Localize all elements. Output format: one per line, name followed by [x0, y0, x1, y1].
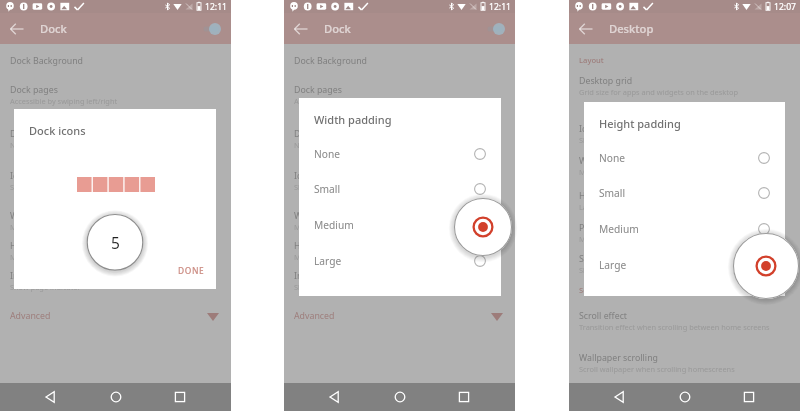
- staticText: Layout: [579, 55, 604, 65]
- staticText: Show the status bar: [579, 265, 648, 275]
- button[interactable]: Recent apps: [166, 383, 194, 411]
- button[interactable]: Dock Background: [0, 49, 231, 73]
- staticText: Dock pages: [10, 84, 58, 96]
- staticText: Large: [599, 258, 627, 272]
- button[interactable]: None: [299, 136, 501, 172]
- staticText: Height padding: [599, 116, 681, 131]
- button[interactable]: Desktop grid: [569, 69, 800, 102]
- staticText: Medium: [294, 252, 323, 262]
- button[interactable]: Dock icons: [284, 122, 515, 155]
- staticText: Dock icons: [294, 128, 339, 140]
- staticText: Grid size for apps and widgets on the de…: [579, 87, 738, 97]
- staticText: 5: [111, 232, 120, 253]
- button[interactable]: Medium: [299, 207, 501, 243]
- staticText: Transition effect when scrolling between…: [579, 322, 770, 332]
- staticText: Advanced: [10, 310, 51, 322]
- button[interactable]: Indicator: [284, 264, 515, 297]
- staticText: None: [314, 147, 340, 161]
- button[interactable]: Home: [386, 383, 414, 411]
- button[interactable]: Dock icons: [0, 122, 231, 155]
- staticText: Desktop: [609, 21, 654, 36]
- staticText: Width padding: [314, 112, 392, 127]
- button[interactable]: Dock pages: [284, 78, 515, 111]
- button[interactable]: Large: [299, 243, 501, 279]
- staticText: Medium: [579, 167, 608, 177]
- button[interactable]: Height padding: [0, 234, 231, 267]
- staticText: Status bar: [579, 253, 622, 265]
- staticText: 12:07: [774, 1, 796, 13]
- button[interactable]: Navigate up: [5, 16, 31, 42]
- staticText: Indicator: [10, 270, 48, 282]
- button[interactable]: None: [584, 140, 785, 176]
- button[interactable]: Indicator: [0, 264, 231, 297]
- staticText: Scroll wallpaper when scrolling homescre…: [579, 364, 735, 374]
- button[interactable]: Large: [584, 247, 785, 283]
- staticText: Accessible by swiping left/right: [10, 96, 118, 106]
- staticText: Medium: [599, 222, 639, 236]
- button[interactable]: Medium: [584, 211, 785, 247]
- button[interactable]: Advanced: [284, 303, 515, 329]
- staticText: Dock: [324, 21, 351, 36]
- button[interactable]: Wallpaper scrolling: [569, 346, 800, 379]
- staticText: Large: [579, 202, 599, 212]
- button[interactable]: Scroll effect: [569, 304, 800, 337]
- staticText: Dock: [40, 21, 67, 36]
- button[interactable]: Icon labels: [0, 164, 231, 197]
- staticText: Indicator: [294, 270, 332, 282]
- staticText: None: [599, 151, 625, 165]
- button[interactable]: Height padding: [284, 234, 515, 267]
- button[interactable]: Small: [299, 171, 501, 207]
- button[interactable]: Advanced: [0, 303, 231, 329]
- button[interactable]: Status bar: [569, 247, 800, 280]
- button[interactable]: Width padding: [284, 204, 515, 237]
- button[interactable]: Back: [37, 383, 65, 411]
- staticText: Icon labels: [10, 170, 55, 182]
- button[interactable]: Small: [584, 175, 785, 211]
- staticText: Accessible by swiping left/right: [294, 96, 402, 106]
- staticText: Show labels under dock icons: [10, 182, 113, 192]
- button[interactable]: Icon labels: [569, 117, 800, 150]
- staticText: Scroll effect: [579, 310, 628, 322]
- staticText: Show labels under dock icons: [294, 182, 397, 192]
- button[interactable]: Persistent search bar: [569, 216, 800, 249]
- button[interactable]: Dock pages: [0, 78, 231, 111]
- button[interactable]: DONE: [172, 261, 210, 279]
- staticText: Width padding: [10, 210, 72, 222]
- staticText: DONE: [178, 265, 205, 276]
- button[interactable]: Back: [606, 383, 634, 411]
- staticText: Large: [314, 254, 342, 268]
- staticText: Desktop grid: [579, 75, 633, 87]
- staticText: Dock icons: [10, 128, 55, 140]
- staticText: Medium: [314, 218, 354, 232]
- staticText: Dock Background: [294, 55, 367, 67]
- button[interactable]: Icon labels: [284, 164, 515, 197]
- staticText: Persistent search bar: [579, 222, 667, 234]
- button[interactable]: Navigate up: [574, 16, 600, 42]
- staticText: Dock pages: [294, 84, 342, 96]
- staticText: Medium: [294, 222, 323, 232]
- staticText: Height padding: [579, 190, 644, 202]
- button[interactable]: Home: [671, 383, 699, 411]
- button[interactable]: Recent apps: [735, 383, 763, 411]
- button[interactable]: Recent apps: [450, 383, 478, 411]
- staticText: Show page indicator: [294, 282, 365, 292]
- staticText: Number of icons in the dock: [10, 140, 108, 150]
- staticText: Icon labels: [579, 123, 624, 135]
- staticText: Wallpaper scrolling: [579, 352, 658, 364]
- button[interactable]: Enable dock: [481, 18, 511, 40]
- button[interactable]: Width padding: [0, 204, 231, 237]
- button[interactable]: Back: [321, 383, 349, 411]
- button[interactable]: Dock Background: [284, 49, 515, 73]
- staticText: 12:11: [205, 1, 227, 13]
- staticText: Height padding: [10, 240, 75, 252]
- button[interactable]: Width padding: [569, 149, 800, 182]
- button[interactable]: Home: [102, 383, 130, 411]
- staticText: Width padding: [579, 155, 641, 167]
- staticText: Width padding: [294, 210, 356, 222]
- staticText: Show page indicator: [10, 282, 81, 292]
- button[interactable]: Navigate up: [289, 16, 315, 42]
- button[interactable]: Height padding: [569, 184, 800, 217]
- staticText: Medium: [579, 234, 608, 244]
- staticText: Height padding: [294, 240, 359, 252]
- button[interactable]: Enable dock: [197, 18, 227, 40]
